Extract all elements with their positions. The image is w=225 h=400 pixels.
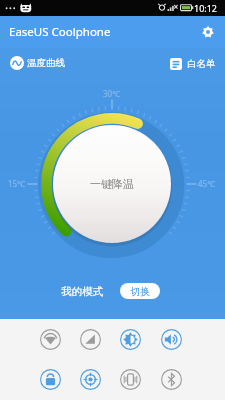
- button[interactable]: Settings: [196, 20, 220, 44]
- staticText: 一键降温: [90, 177, 134, 191]
- staticText: 30℃: [103, 88, 121, 99]
- button[interactable]: Wi-Fi: [30, 319, 70, 359]
- staticText: 10:12: [194, 2, 218, 14]
- staticText: EaseUS Coolphone: [9, 24, 111, 40]
- button[interactable]: 温度曲线: [10, 56, 65, 70]
- button[interactable]: Volume: [151, 319, 192, 359]
- staticText: 45℃: [198, 178, 216, 189]
- button[interactable]: Brightness: [110, 319, 151, 359]
- button[interactable]: 切换: [120, 283, 160, 299]
- button[interactable]: Bluetooth: [151, 359, 192, 400]
- staticText: 切换: [130, 285, 150, 298]
- button[interactable]: Location: [70, 359, 110, 400]
- staticText: 白名单: [187, 58, 216, 70]
- staticText: 我的模式: [61, 285, 103, 298]
- button[interactable]: 一键降温: [53, 125, 171, 243]
- staticText: 15℃: [8, 178, 26, 189]
- button[interactable]: Screen lock: [30, 359, 70, 400]
- button[interactable]: Vibrate: [110, 359, 151, 400]
- button[interactable]: 白名单: [170, 58, 216, 70]
- staticText: 温度曲线: [27, 57, 65, 69]
- button[interactable]: Mobile signal: [70, 319, 110, 359]
